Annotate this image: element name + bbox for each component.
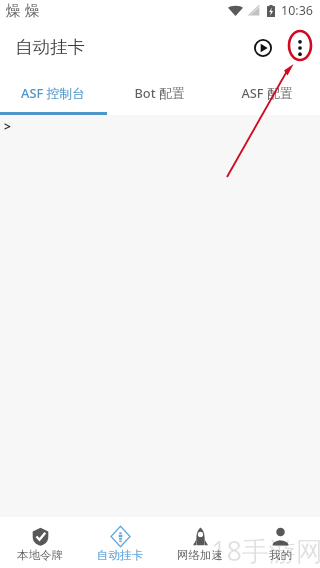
staticText: > — [4, 118, 11, 134]
staticText: 自动挂卡 — [15, 36, 85, 58]
staticText: 燥 燥 — [6, 0, 40, 20]
button[interactable]: 我的 — [240, 517, 320, 568]
staticText: ASF 配置 — [241, 84, 293, 101]
button[interactable]: More options — [281, 29, 319, 67]
button[interactable]: ASF 控制台 — [0, 72, 106, 112]
button[interactable]: 本地令牌 — [0, 517, 80, 568]
staticText: 自动挂卡 — [97, 548, 143, 562]
button[interactable]: 自动挂卡 — [80, 517, 160, 568]
staticText: 我的 — [269, 548, 292, 562]
staticText: 10:36 — [281, 2, 313, 19]
staticText: Bot 配置 — [134, 84, 185, 101]
button[interactable]: Bot 配置 — [106, 72, 213, 112]
button[interactable]: 网络加速 — [160, 517, 240, 568]
staticText: 18手游网 — [211, 532, 320, 568]
staticText: ASF 控制台 — [21, 84, 85, 101]
staticText: 网络加速 — [177, 548, 223, 562]
staticText: 本地令牌 — [17, 548, 63, 562]
button[interactable]: Start — [245, 30, 281, 66]
button[interactable]: ASF 配置 — [213, 72, 320, 112]
